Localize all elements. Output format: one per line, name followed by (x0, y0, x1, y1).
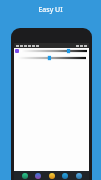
button[interactable]: Camera (22, 173, 28, 179)
button[interactable]: Apps (76, 173, 82, 179)
button[interactable] (14, 48, 89, 54)
button[interactable]: Browser (62, 173, 68, 179)
button[interactable]: Photos (35, 173, 41, 179)
button[interactable]: Gallery (49, 173, 55, 179)
staticText: Easy UI (38, 5, 63, 15)
button[interactable] (14, 55, 89, 61)
